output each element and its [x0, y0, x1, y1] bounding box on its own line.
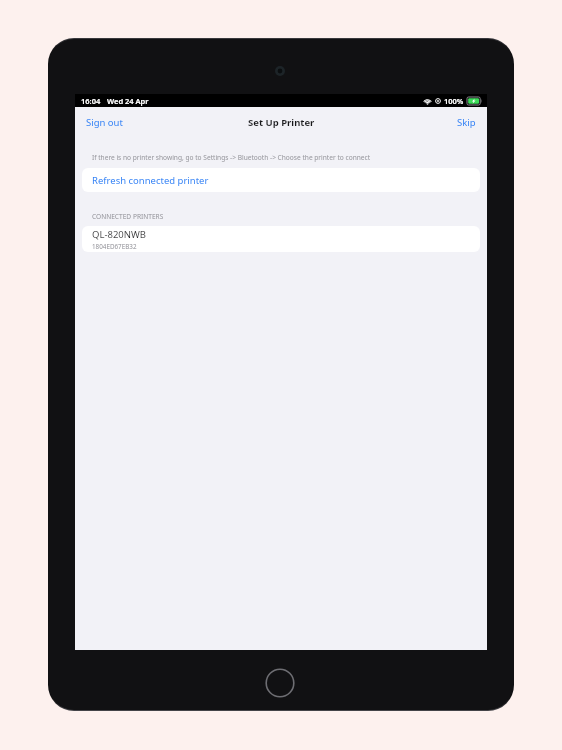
- button[interactable]: Sign out: [75, 111, 134, 134]
- staticText: 1804ED67EB32: [92, 242, 137, 251]
- staticText: If there is no printer showing, go to Se…: [92, 153, 371, 162]
- staticText: CONNECTED PRINTERS: [92, 212, 164, 221]
- button[interactable]: Refresh connected printer: [82, 168, 480, 192]
- button[interactable]: Skip: [446, 111, 487, 134]
- staticText: 16:04: [81, 96, 101, 106]
- staticText: Set Up Printer: [248, 116, 315, 129]
- staticText: Wed 24 Apr: [107, 96, 149, 106]
- staticText: 100%: [444, 96, 464, 106]
- staticText: Refresh connected printer: [92, 174, 209, 187]
- staticText: Sign out: [86, 116, 123, 129]
- staticText: Skip: [457, 116, 476, 129]
- staticText: QL-820NWB: [92, 228, 146, 241]
- button[interactable]: QL-820NWB printer: [82, 226, 480, 252]
